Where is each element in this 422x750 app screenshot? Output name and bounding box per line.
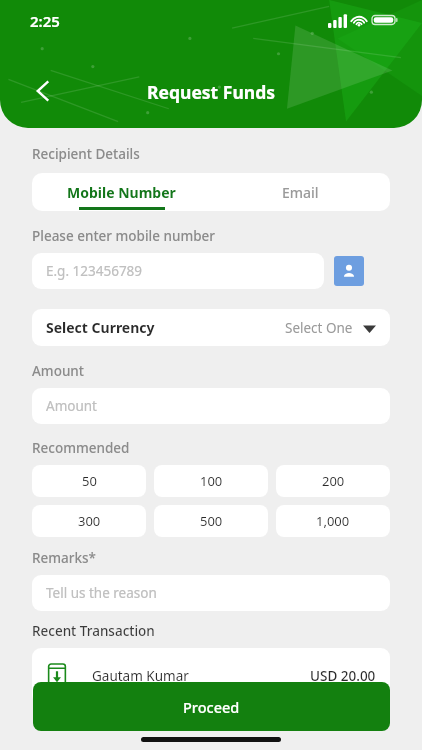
button[interactable]: Select Currency — [32, 309, 390, 346]
button[interactable]: Gautam Kumar — [32, 648, 390, 704]
button[interactable]: 100 — [154, 465, 268, 497]
button[interactable]: Amount — [32, 388, 390, 424]
staticText: Recipient Details — [32, 145, 140, 163]
button[interactable]: Tell us the reason — [32, 575, 390, 611]
staticText: 2:25 — [30, 11, 60, 31]
staticText: Request Funds — [147, 80, 275, 104]
staticText: 100 — [200, 472, 223, 490]
staticText: Gautam Kumar — [92, 667, 189, 685]
staticText: Amount — [46, 397, 97, 415]
button[interactable]: 500 — [154, 505, 268, 537]
staticText: Remarks* — [32, 549, 97, 567]
staticText: Mobile Number — [67, 183, 176, 202]
other: Signal, wifi and battery status — [328, 12, 396, 28]
button[interactable]: Pick contact — [334, 256, 364, 286]
button[interactable]: Mobile Number — [32, 173, 211, 211]
button[interactable]: Proceed — [33, 682, 390, 731]
button[interactable]: E.g. 123456789 — [32, 253, 324, 289]
staticText: Proceed — [183, 697, 240, 717]
staticText: Amount — [32, 362, 84, 380]
button[interactable]: Email — [211, 173, 390, 211]
staticText: 300 — [78, 512, 101, 530]
staticText: Select Currency — [46, 318, 155, 337]
staticText: Email — [282, 183, 319, 202]
button[interactable]: Back — [22, 70, 64, 112]
staticText: 200 — [322, 472, 345, 490]
button[interactable]: 50 — [32, 465, 146, 497]
staticText: Select One — [285, 319, 353, 337]
staticText: Tell us the reason — [46, 584, 157, 602]
staticText: 50 — [82, 472, 97, 490]
button[interactable]: 1,000 — [276, 505, 390, 537]
staticText: Recent Transaction — [32, 622, 155, 640]
button[interactable]: 300 — [32, 505, 146, 537]
staticText: E.g. 123456789 — [46, 262, 143, 280]
staticText: USD 20.00 — [310, 667, 376, 685]
staticText: 500 — [200, 512, 223, 530]
staticText: Please enter mobile number — [32, 227, 216, 245]
staticText: 1,000 — [316, 512, 350, 530]
staticText: Recommended — [32, 439, 130, 457]
button[interactable]: 200 — [276, 465, 390, 497]
